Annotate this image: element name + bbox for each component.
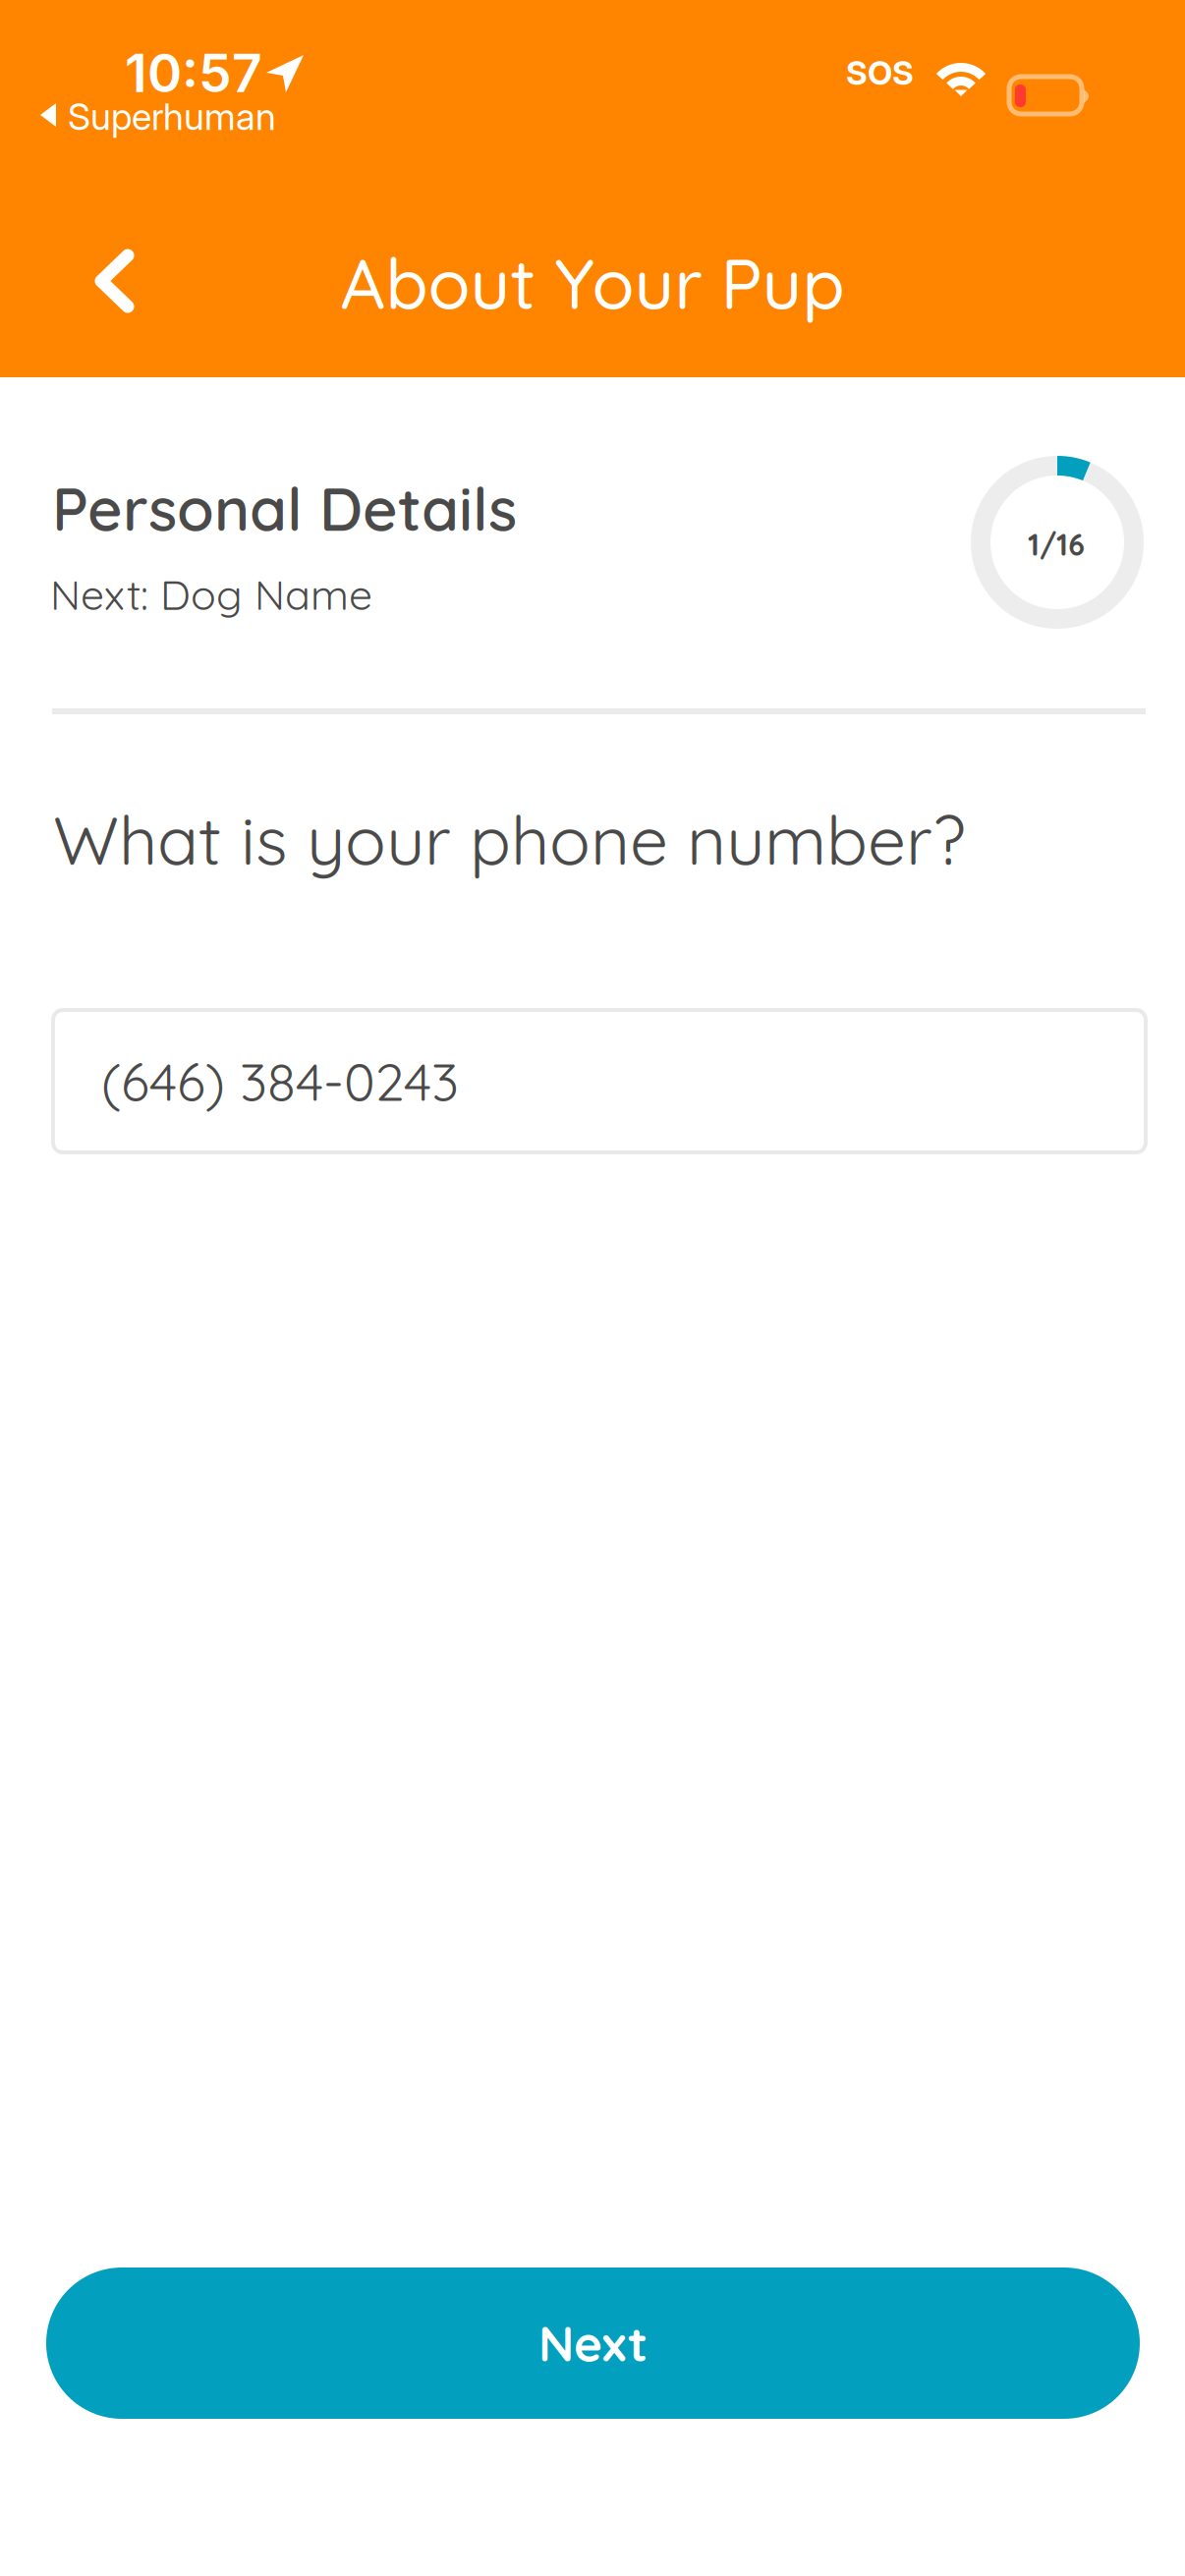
staticText: Next bbox=[538, 2313, 648, 2374]
staticText: Next: Dog Name bbox=[50, 568, 372, 620]
button[interactable]: Back bbox=[59, 216, 170, 346]
staticText: What is your phone number? bbox=[53, 797, 966, 882]
staticText: About Your Pup bbox=[340, 240, 845, 326]
staticText: Personal Details bbox=[52, 471, 517, 546]
staticText: (646) 384-0243 bbox=[101, 1048, 459, 1114]
button[interactable]: Next bbox=[46, 2268, 1140, 2419]
staticText: SOS bbox=[846, 53, 914, 93]
staticText: Superhuman bbox=[68, 94, 276, 139]
staticText: 10:57 bbox=[125, 41, 262, 105]
staticText: 1/16 bbox=[1028, 525, 1085, 563]
